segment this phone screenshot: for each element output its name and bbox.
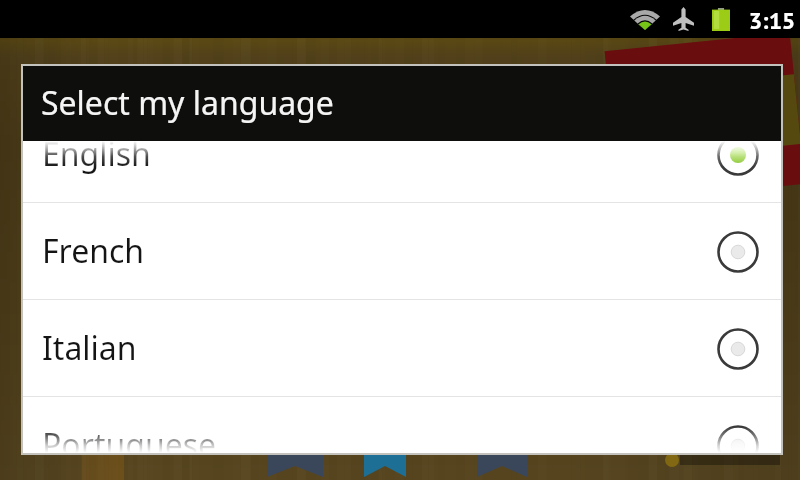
- staticText: French: [42, 229, 145, 273]
- other: Not selected: [716, 327, 760, 371]
- button[interactable]: French: [23, 203, 781, 300]
- other: Airplane mode: [673, 7, 694, 31]
- staticText: English: [42, 141, 151, 176]
- button[interactable]: Portuguese: [23, 397, 781, 453]
- other: Not selected: [716, 424, 760, 453]
- staticText: 3:15: [749, 7, 795, 35]
- staticText: Select my language: [41, 81, 334, 125]
- button[interactable]: Italian: [23, 300, 781, 397]
- button[interactable]: English: [23, 141, 781, 203]
- other: Wi-Fi: [630, 7, 660, 30]
- other: Selected: [716, 141, 760, 177]
- other: Battery: [712, 8, 730, 31]
- staticText: Italian: [42, 326, 137, 370]
- staticText: Portuguese: [42, 423, 217, 453]
- other: Not selected: [716, 230, 760, 274]
